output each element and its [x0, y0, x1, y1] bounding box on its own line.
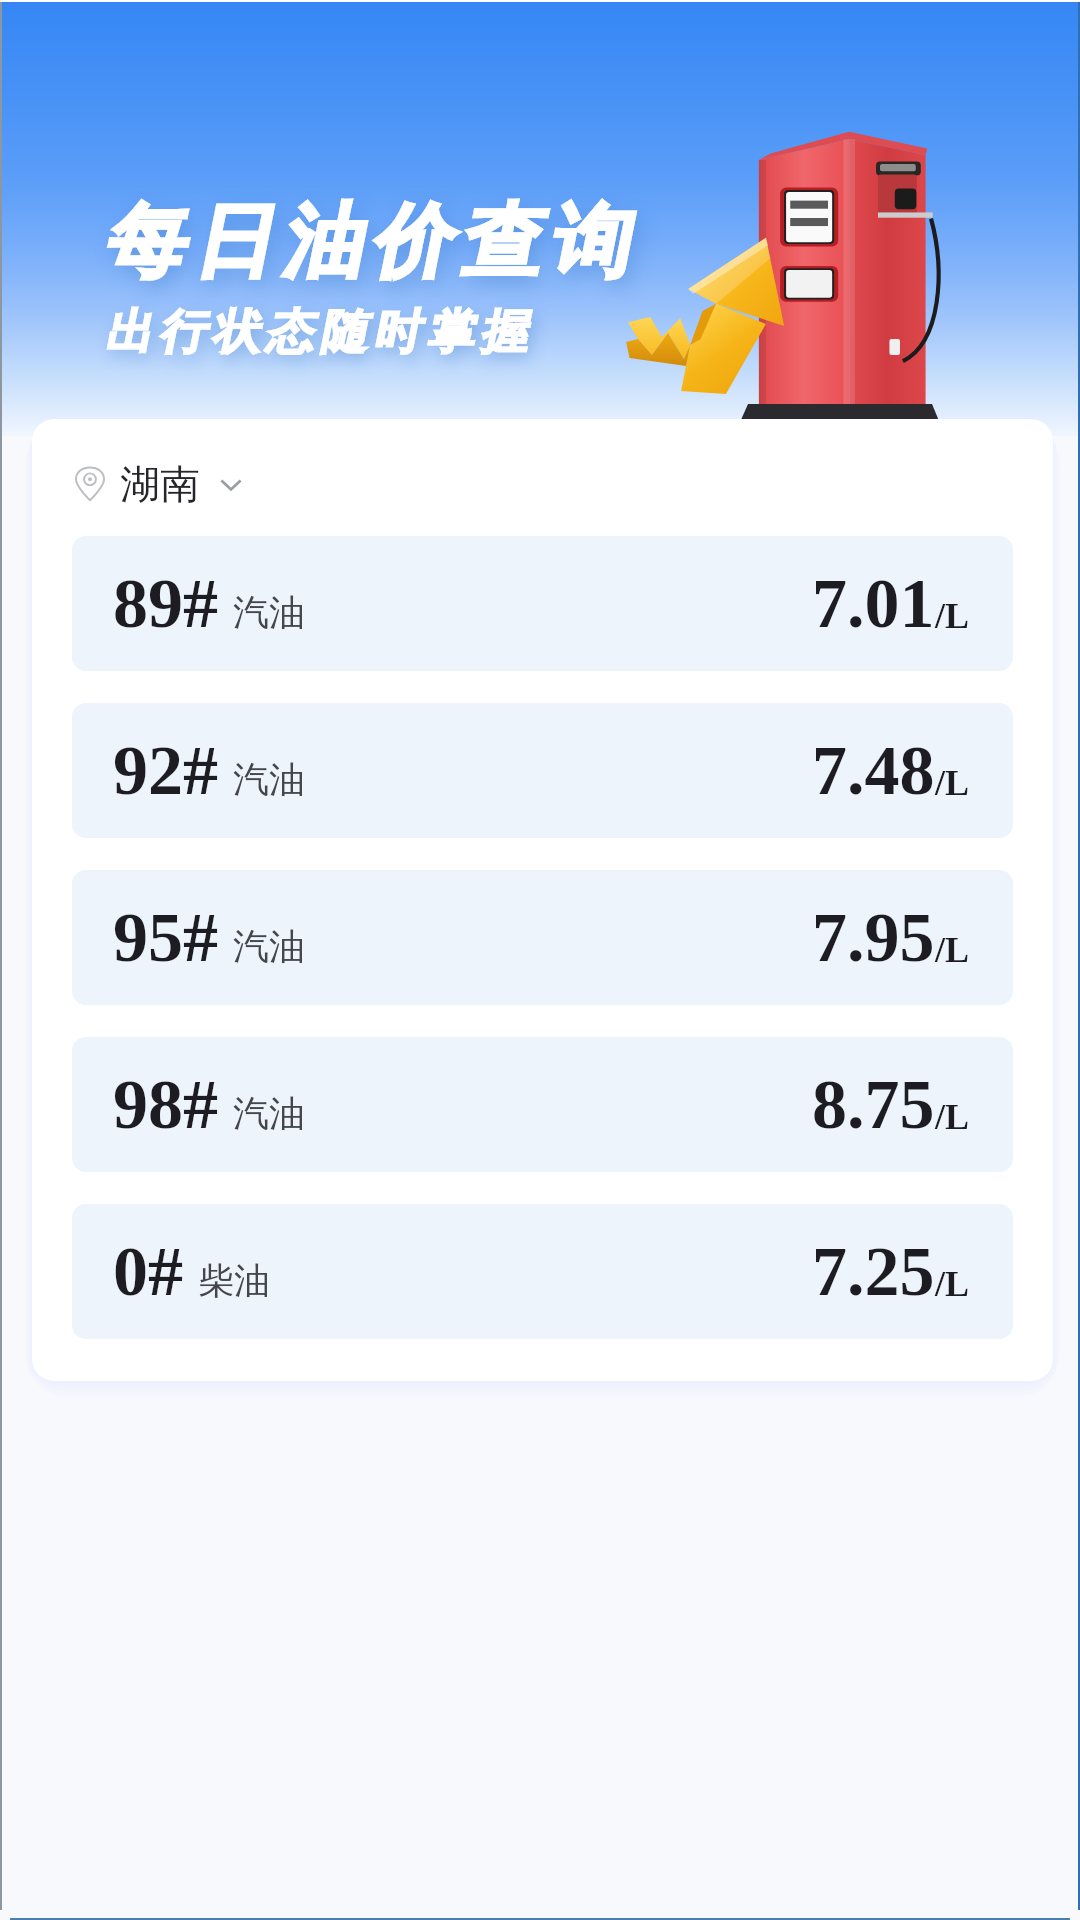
button[interactable]: 98# — [72, 1037, 1013, 1172]
button[interactable]: 95# — [72, 870, 1013, 1005]
staticText: 98# — [113, 1066, 218, 1144]
staticText: 7.01 — [812, 565, 935, 643]
staticText: 92# — [113, 732, 218, 810]
staticText: 每日油价查询 — [94, 192, 628, 293]
staticText: 7.48 — [812, 732, 935, 810]
staticText: 8.75 — [812, 1066, 935, 1144]
staticText: 湖南 — [120, 459, 200, 509]
staticText: 7.95 — [812, 899, 935, 977]
staticText: 出行状态随时掌握 — [102, 303, 531, 362]
button[interactable]: 0# — [72, 1204, 1013, 1339]
staticText: /L — [935, 930, 970, 970]
staticText: 7.25 — [812, 1233, 935, 1311]
staticText: 89# — [113, 565, 218, 643]
button[interactable]: Select province 湖南 — [66, 455, 252, 513]
staticText: 汽油 — [233, 590, 305, 635]
staticText: 柴油 — [198, 1258, 270, 1303]
button[interactable]: 89# — [72, 536, 1013, 671]
staticText: 汽油 — [233, 1091, 305, 1136]
staticText: 汽油 — [233, 924, 305, 969]
staticText: 95# — [113, 899, 218, 977]
staticText: /L — [935, 1097, 970, 1137]
staticText: 0# — [113, 1233, 183, 1311]
staticText: /L — [935, 596, 970, 636]
button[interactable]: 92# — [72, 703, 1013, 838]
staticText: 汽油 — [233, 757, 305, 802]
staticText: /L — [935, 1264, 970, 1304]
staticText: /L — [935, 763, 970, 803]
